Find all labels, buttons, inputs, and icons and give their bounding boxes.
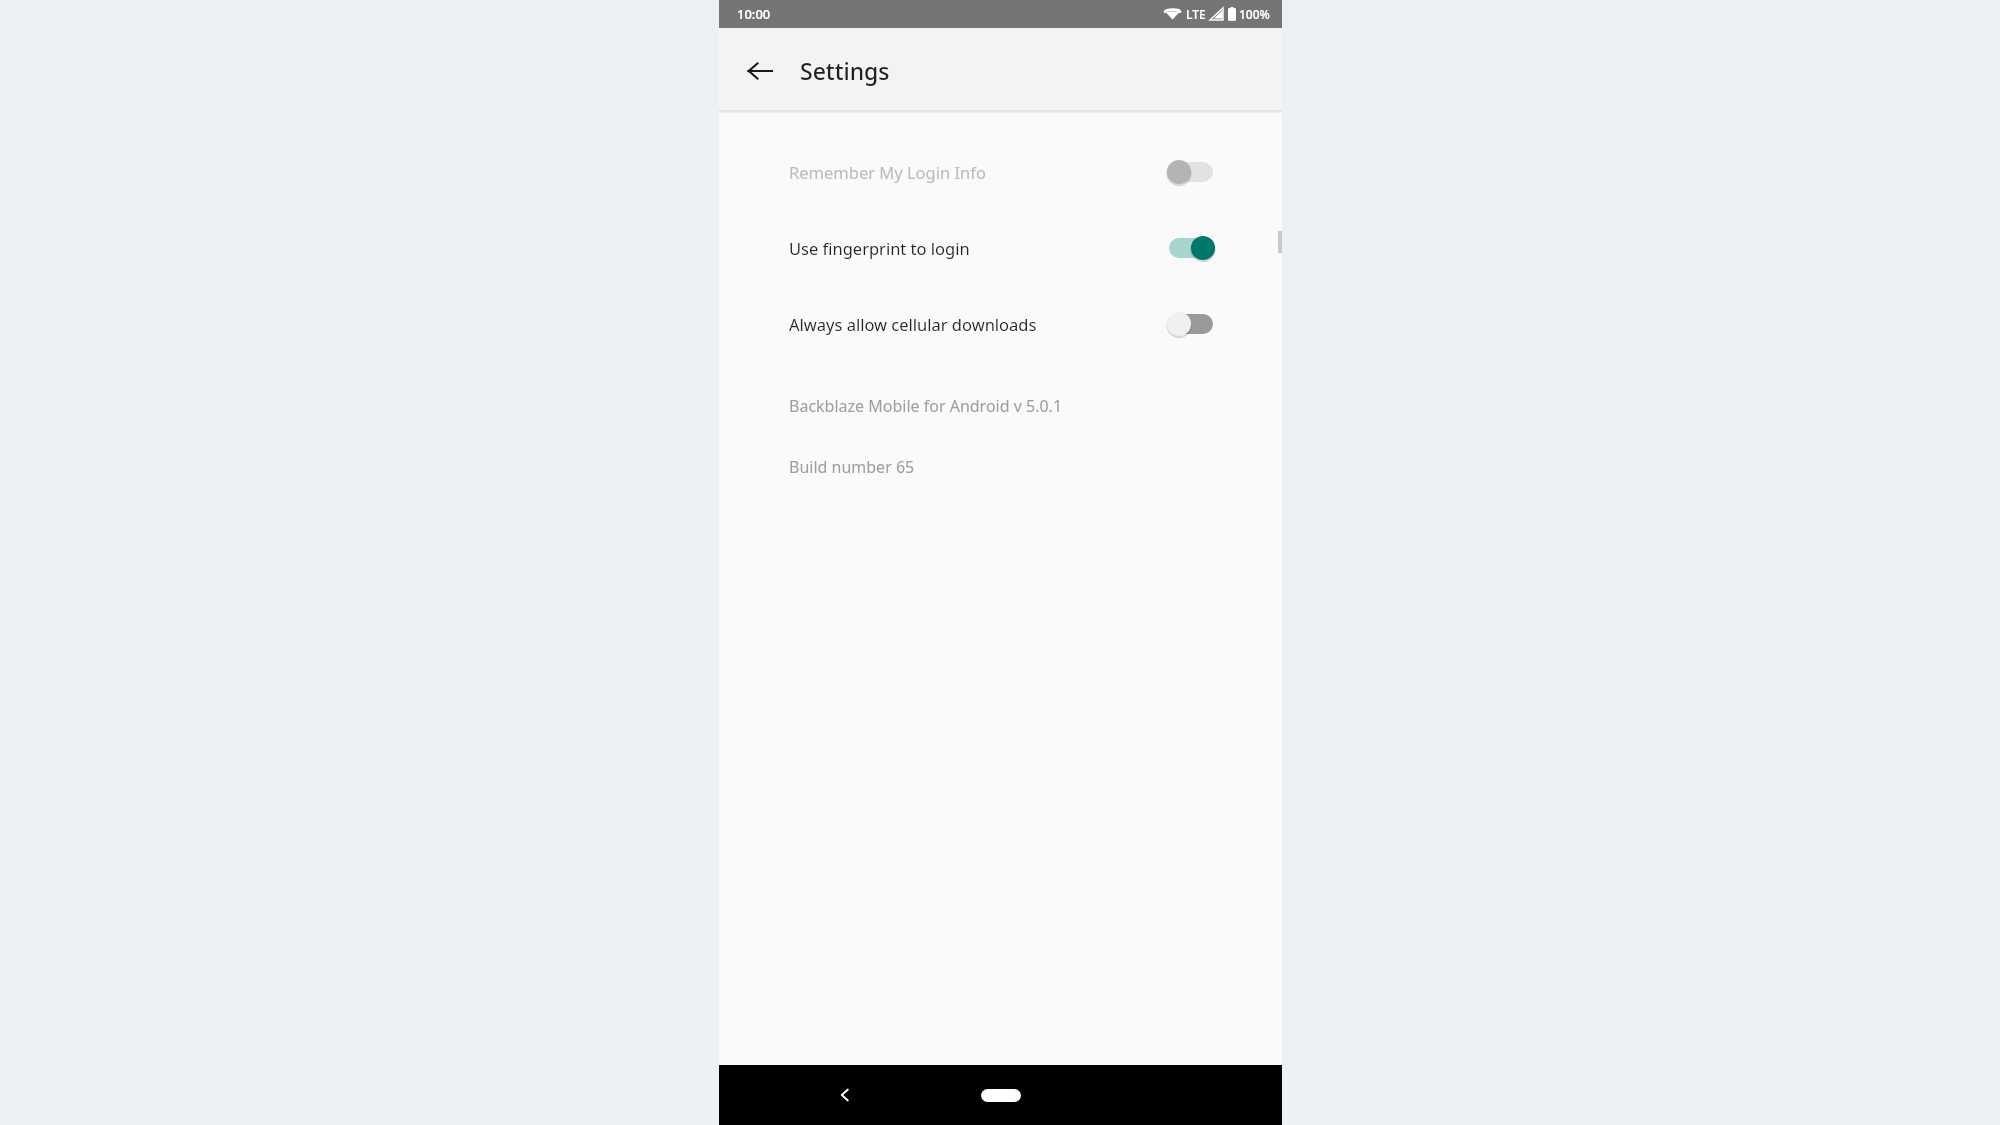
staticText: 10:00 xyxy=(737,5,771,23)
staticText: Use fingerprint to login xyxy=(789,237,1166,259)
staticText: Always allow cellular downloads xyxy=(789,313,1166,335)
button[interactable]: Home xyxy=(972,1079,1030,1111)
staticText: LTE xyxy=(1186,6,1206,22)
button[interactable]: Use fingerprint to login xyxy=(719,210,1282,286)
button[interactable]: Remember My Login Info xyxy=(719,134,1282,210)
staticText: Settings xyxy=(800,55,890,86)
other: Toggle xyxy=(1166,234,1216,262)
staticText: Remember My Login Info xyxy=(789,161,1166,183)
staticText: 100% xyxy=(1239,6,1270,22)
button[interactable]: Back xyxy=(823,1073,867,1117)
staticText: Backblaze Mobile for Android v 5.0.1 xyxy=(789,395,1063,417)
button[interactable]: Back xyxy=(736,47,784,95)
button[interactable]: Always allow cellular downloads xyxy=(719,286,1282,362)
other: Toggle xyxy=(1166,158,1216,186)
staticText: Build number 65 xyxy=(789,456,915,478)
other: Toggle xyxy=(1166,310,1216,338)
